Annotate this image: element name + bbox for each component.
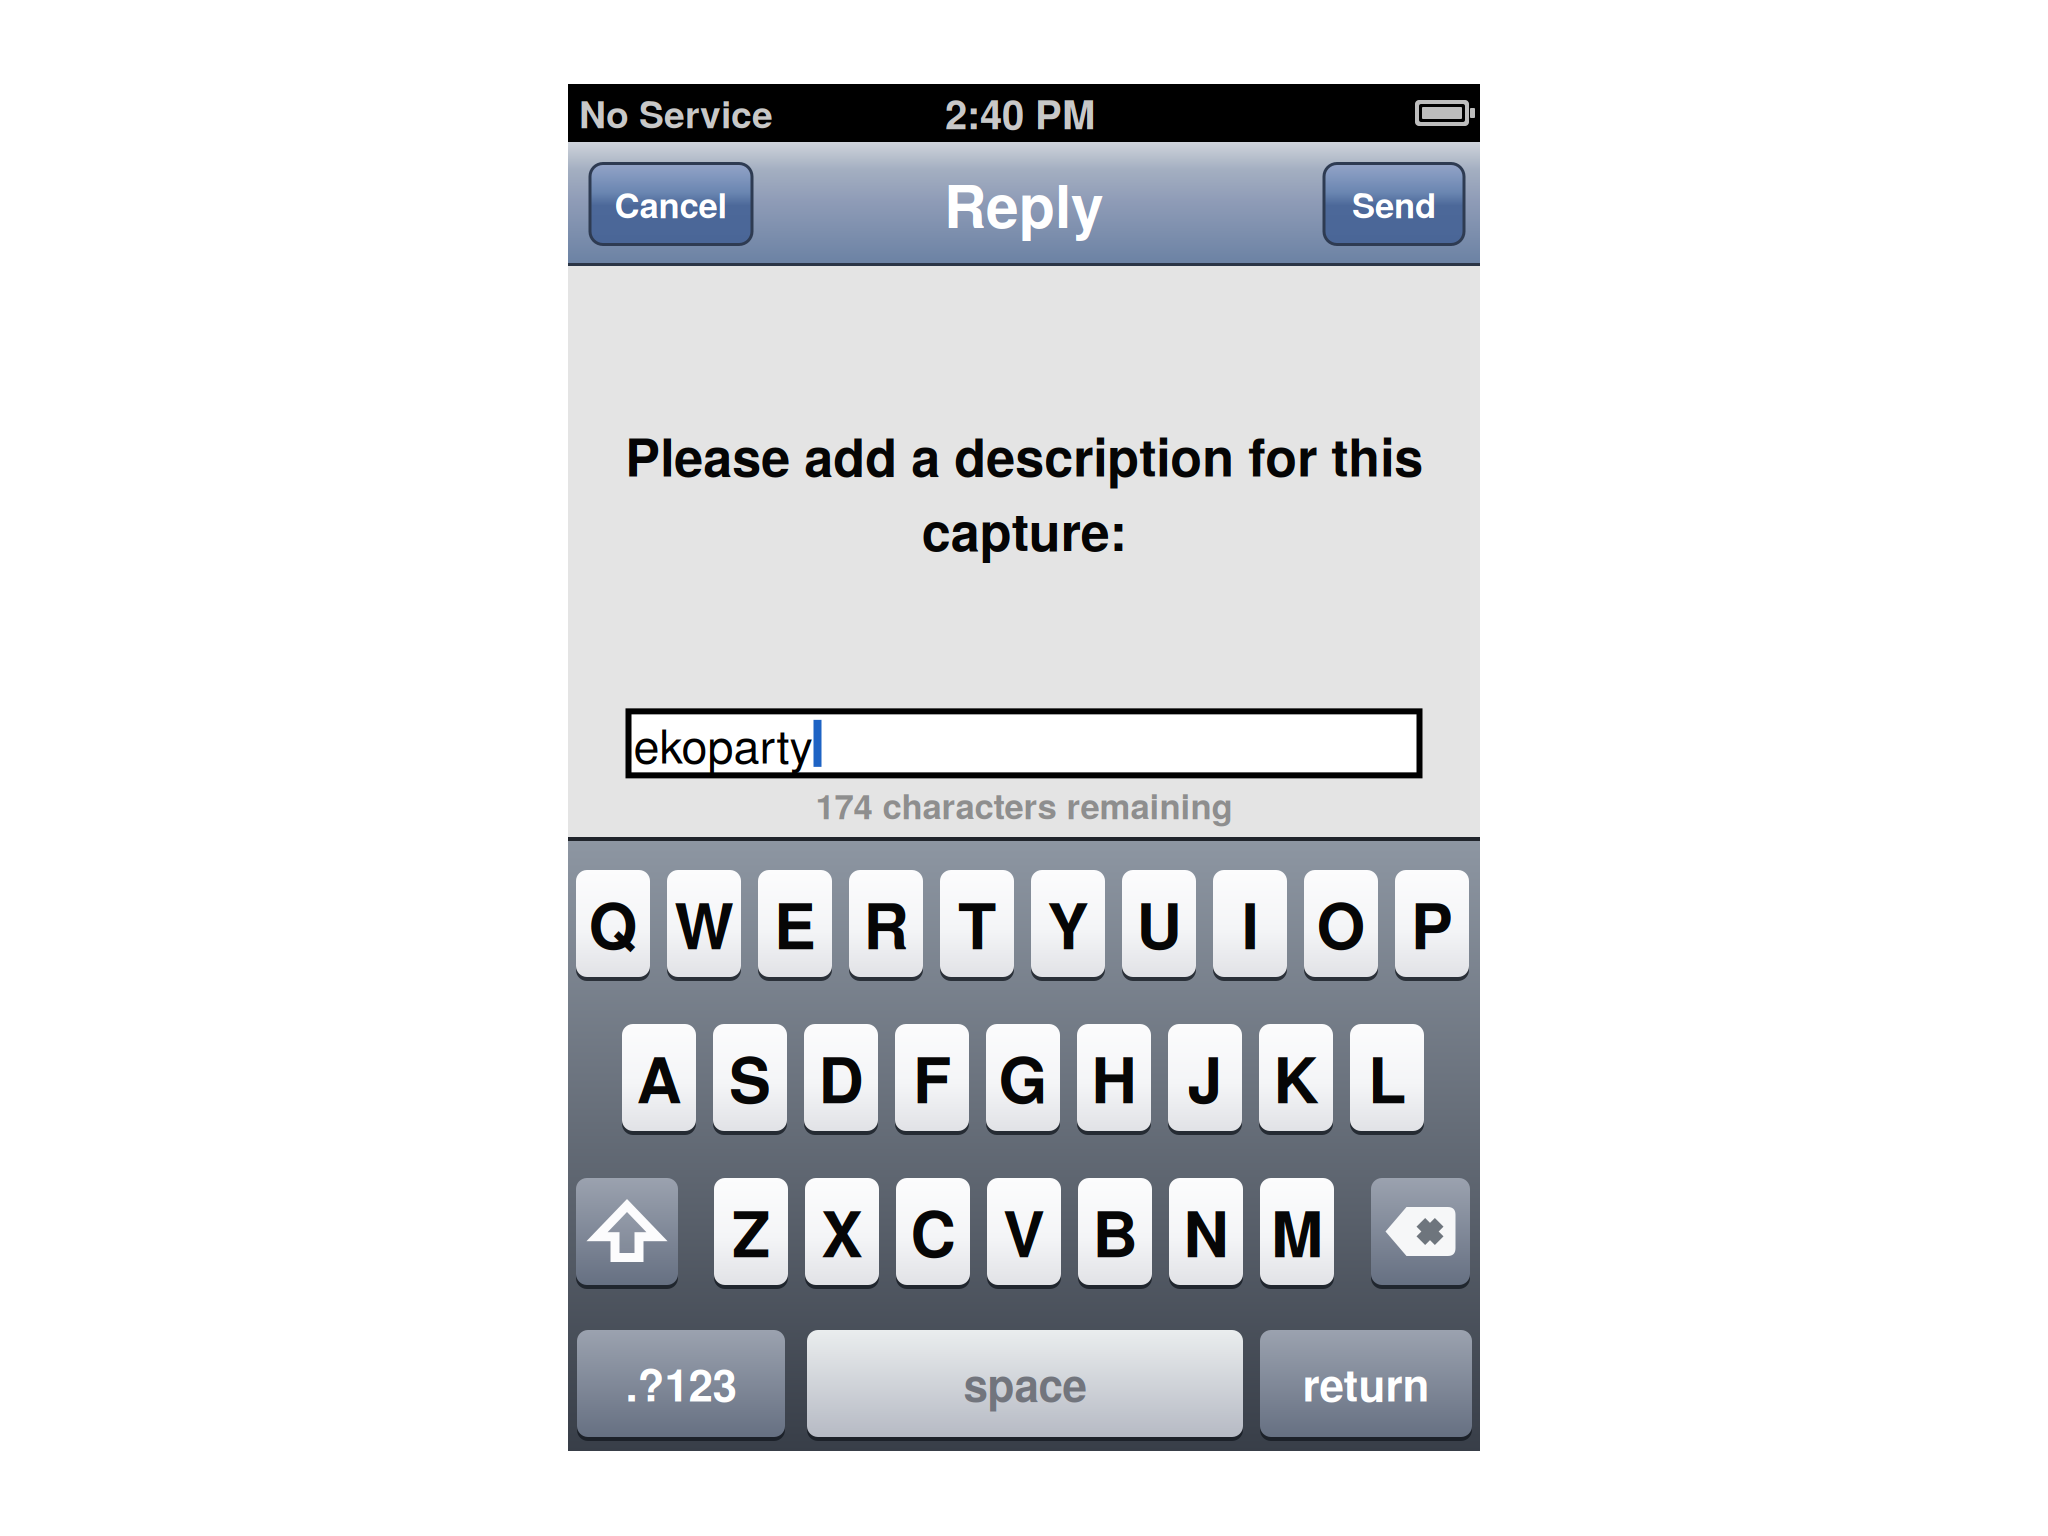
staticText: D [818, 1033, 863, 1122]
staticText: ekoparty [633, 710, 812, 777]
staticText: .?123 [625, 1352, 736, 1415]
button[interactable]: Y [1031, 870, 1105, 977]
button[interactable]: Cancel [590, 163, 752, 244]
button[interactable]: .?123 [577, 1330, 785, 1437]
staticText: R [863, 879, 908, 968]
staticText: S [729, 1033, 771, 1122]
staticText: 174 characters remaining [815, 780, 1232, 830]
button[interactable]: O [1304, 870, 1378, 977]
staticText: X [821, 1187, 863, 1276]
staticText: H [1091, 1033, 1136, 1122]
staticText: Z [732, 1187, 770, 1276]
staticText: L [1368, 1033, 1406, 1122]
staticText: Please add a description for this captur… [625, 418, 1423, 567]
staticText: K [1273, 1033, 1318, 1122]
staticText: Q [588, 879, 637, 968]
staticText: space [963, 1352, 1086, 1415]
button[interactable]: I [1213, 870, 1287, 977]
button[interactable]: U [1122, 870, 1196, 977]
staticText: Cancel [614, 179, 727, 229]
staticText: I [1241, 879, 1258, 968]
button[interactable]: K [1259, 1024, 1333, 1131]
staticText: V [1003, 1187, 1045, 1276]
button[interactable]: H [1077, 1024, 1151, 1131]
button[interactable]: L [1350, 1024, 1424, 1131]
button[interactable]: return [1260, 1330, 1472, 1437]
button[interactable]: A [622, 1024, 696, 1131]
staticText: return [1302, 1352, 1429, 1415]
button[interactable]: T [940, 870, 1014, 977]
staticText: Y [1047, 879, 1089, 968]
button[interactable]: F [895, 1024, 969, 1131]
button[interactable]: Send [1324, 163, 1464, 244]
button[interactable]: Shift [576, 1178, 678, 1285]
button[interactable]: P [1395, 870, 1469, 977]
button[interactable]: R [849, 870, 923, 977]
staticText: O [1316, 879, 1365, 968]
staticText: Send [1352, 179, 1436, 229]
button[interactable]: B [1078, 1178, 1152, 1285]
staticText: T [958, 879, 996, 968]
button[interactable]: X [805, 1178, 879, 1285]
button[interactable]: W [667, 870, 741, 977]
staticText: N [1183, 1187, 1228, 1276]
staticText: M [1271, 1187, 1323, 1276]
staticText: No Service [579, 86, 773, 140]
staticText: W [674, 879, 733, 968]
staticText: Reply [944, 162, 1104, 246]
button[interactable]: Delete [1371, 1178, 1470, 1285]
button[interactable]: G [986, 1024, 1060, 1131]
button[interactable]: space [807, 1330, 1243, 1437]
button[interactable]: J [1168, 1024, 1242, 1131]
staticText: B [1092, 1187, 1137, 1276]
staticText: P [1411, 879, 1453, 968]
button[interactable]: Z [714, 1178, 788, 1285]
button[interactable]: V [987, 1178, 1061, 1285]
button[interactable]: Q [576, 870, 650, 977]
staticText: G [998, 1033, 1047, 1122]
staticText: F [913, 1033, 951, 1122]
button[interactable]: E [758, 870, 832, 977]
staticText: A [636, 1033, 681, 1122]
button[interactable]: N [1169, 1178, 1243, 1285]
staticText: U [1136, 879, 1181, 968]
button[interactable]: S [713, 1024, 787, 1131]
button[interactable]: M [1260, 1178, 1334, 1285]
staticText: 2:40 PM [945, 84, 1095, 142]
button[interactable]: D [804, 1024, 878, 1131]
staticText: E [774, 879, 816, 968]
staticText: J [1187, 1033, 1222, 1122]
staticText: C [910, 1187, 955, 1276]
button[interactable]: C [896, 1178, 970, 1285]
